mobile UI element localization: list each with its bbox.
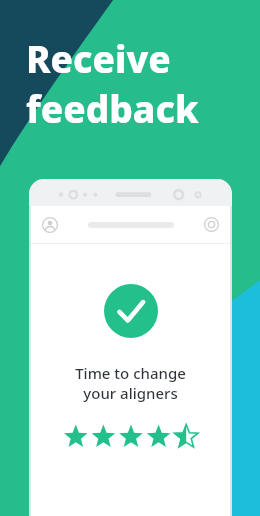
- button[interactable]: Profile: [42, 217, 58, 233]
- button[interactable]: Help: [204, 217, 219, 232]
- staticText: Receive: [26, 33, 171, 83]
- staticText: feedback: [26, 83, 199, 133]
- staticText: Time to change your aligners: [31, 363, 230, 403]
- button[interactable]: Rating 4.5 out of 5 stars: [62, 424, 200, 450]
